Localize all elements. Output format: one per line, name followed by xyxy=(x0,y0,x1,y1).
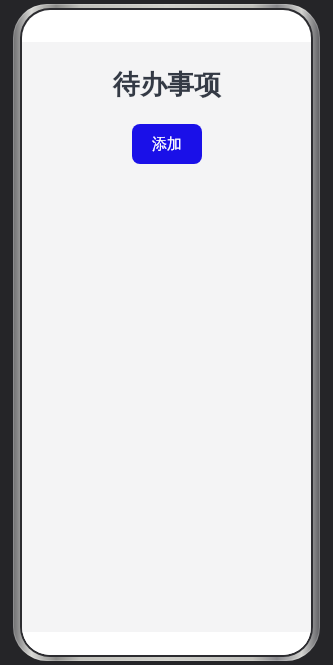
staticText: 待办事项 xyxy=(113,68,221,102)
staticText: 添加 xyxy=(152,135,182,154)
button[interactable]: 添加 xyxy=(132,124,202,164)
